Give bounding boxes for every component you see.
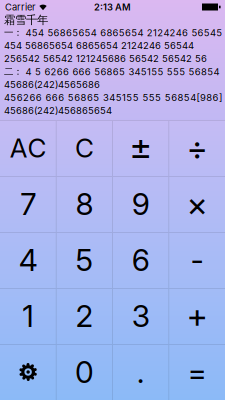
staticText: 256542 56542 121245686 56542 56542 56 xyxy=(4,53,207,64)
button[interactable]: + xyxy=(169,288,225,344)
staticText: 5 xyxy=(75,242,93,278)
staticText: 6 xyxy=(132,242,150,278)
staticText: + xyxy=(186,296,207,336)
staticText: 2:13 AM xyxy=(94,1,131,13)
staticText: 1 xyxy=(22,298,34,334)
button[interactable]: 6 xyxy=(112,232,169,288)
button[interactable]: . xyxy=(112,344,169,400)
staticText: 456266 666 56865 345155 555 56854[986] xyxy=(4,92,222,103)
button[interactable]: 8 xyxy=(56,176,112,232)
staticText: AC xyxy=(10,132,46,164)
staticText: 45686(242)456865654 xyxy=(4,105,112,116)
staticText: ± xyxy=(129,124,152,168)
staticText: 9 xyxy=(132,186,150,222)
staticText: 霜雪千年 xyxy=(4,13,48,27)
button[interactable]: 0 xyxy=(56,344,112,400)
staticText: 45686(242)4565686 xyxy=(4,79,100,90)
button[interactable]: - xyxy=(169,232,225,288)
staticText: C xyxy=(75,132,94,164)
button[interactable]: = xyxy=(169,344,225,400)
staticText: 4 xyxy=(19,242,38,278)
staticText: 二： 4 5 6266 666 56865 345155 555 56854 xyxy=(4,65,219,77)
staticText: Carrier xyxy=(5,1,36,13)
button[interactable]: 4 xyxy=(0,232,56,288)
button[interactable]: 2 xyxy=(56,288,112,344)
staticText: 3 xyxy=(132,298,150,334)
staticText: 8 xyxy=(75,186,93,222)
button[interactable]: 1 xyxy=(0,288,56,344)
button[interactable]: C xyxy=(56,120,112,176)
staticText: = xyxy=(187,354,206,390)
staticText: 0 xyxy=(75,354,94,390)
staticText: 7 xyxy=(20,186,36,222)
button[interactable]: AC xyxy=(0,120,56,176)
staticText: 2 xyxy=(75,298,93,334)
staticText: . xyxy=(137,354,145,390)
staticText: × xyxy=(186,184,207,224)
button[interactable]: 5 xyxy=(56,232,112,288)
button[interactable]: 9 xyxy=(112,176,169,232)
button[interactable]: ÷ xyxy=(169,120,225,176)
staticText: 454 56865654 6865654 2124246 56544 xyxy=(4,40,194,51)
button[interactable] xyxy=(0,344,56,400)
button[interactable]: 7 xyxy=(0,176,56,232)
staticText: 一： 454 56865654 6865654 2124246 56545 xyxy=(4,26,222,38)
button[interactable]: 3 xyxy=(112,288,169,344)
button[interactable]: ± xyxy=(112,120,169,176)
staticText: - xyxy=(190,242,203,278)
staticText: ÷ xyxy=(186,128,207,168)
button[interactable]: × xyxy=(169,176,225,232)
